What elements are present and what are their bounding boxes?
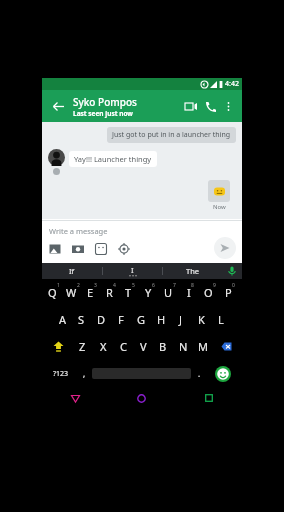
button[interactable]: C xyxy=(113,333,133,360)
button[interactable]: Location xyxy=(118,243,130,255)
staticText: W xyxy=(66,285,77,300)
staticText: 2 xyxy=(77,282,80,289)
button[interactable]: R xyxy=(101,279,120,306)
staticText: Y xyxy=(145,285,152,300)
staticText: H xyxy=(157,312,166,327)
button[interactable]: If xyxy=(42,266,102,276)
button[interactable]: Camera xyxy=(72,243,84,255)
button[interactable]: Y xyxy=(140,279,160,306)
staticText: Just got to put in in a launcher thing xyxy=(112,130,231,140)
staticText: 7 xyxy=(173,282,176,289)
staticText: V xyxy=(140,339,147,354)
button[interactable]: L xyxy=(211,306,231,333)
staticText: A xyxy=(59,312,67,327)
button[interactable]: B xyxy=(153,333,173,360)
button[interactable]: N xyxy=(173,333,193,360)
staticText: 6 xyxy=(152,282,155,289)
staticText: I xyxy=(131,265,134,275)
button[interactable]: W xyxy=(63,279,82,306)
staticText: P xyxy=(225,285,232,300)
button[interactable]: Shift xyxy=(44,333,72,360)
button[interactable]: ?123 xyxy=(45,360,76,387)
staticText: . xyxy=(198,368,201,379)
button[interactable]: Space xyxy=(92,360,191,387)
button[interactable]: T xyxy=(120,279,140,306)
button[interactable]: More options xyxy=(220,98,236,114)
button[interactable]: F xyxy=(111,306,131,333)
button[interactable]: Recents xyxy=(175,387,242,409)
button[interactable]: U xyxy=(160,279,180,306)
button[interactable]: S xyxy=(72,306,91,333)
staticText: 0 xyxy=(232,282,235,289)
staticText: T xyxy=(125,285,132,300)
staticText: 9 xyxy=(213,282,216,289)
button[interactable]: I xyxy=(103,265,162,277)
staticText: 4:42 xyxy=(225,79,239,89)
button[interactable]: M xyxy=(193,333,213,360)
staticText: 4 xyxy=(113,282,116,289)
button[interactable]: Video call xyxy=(180,96,200,116)
button[interactable]: Call xyxy=(200,96,220,116)
staticText: D xyxy=(97,312,106,327)
staticText: F xyxy=(118,312,124,327)
staticText: L xyxy=(218,312,224,327)
button[interactable]: E xyxy=(82,279,101,306)
staticText: E xyxy=(87,285,94,300)
button[interactable]: , xyxy=(76,360,92,387)
button[interactable]: K xyxy=(191,306,211,333)
button[interactable]: Z xyxy=(72,333,93,360)
staticText: Yay!!! Launcher thingy xyxy=(74,154,152,164)
staticText: , xyxy=(83,368,86,379)
staticText: 5 xyxy=(132,282,135,289)
staticText: The xyxy=(186,266,200,276)
button[interactable]: Back xyxy=(42,387,108,409)
button[interactable]: G xyxy=(131,306,151,333)
button[interactable] xyxy=(208,180,230,202)
button[interactable]: D xyxy=(91,306,111,333)
staticText: U xyxy=(164,285,173,300)
button[interactable]: A xyxy=(53,306,72,333)
staticText: 1 xyxy=(57,282,60,289)
staticText: Write a message xyxy=(49,226,108,236)
staticText: Syko Pompos xyxy=(73,95,137,109)
button[interactable]: Sticker xyxy=(95,243,107,255)
staticText: C xyxy=(120,339,127,354)
button[interactable]: Voice input xyxy=(222,266,242,276)
button[interactable]: Home xyxy=(108,387,175,409)
button[interactable]: Gallery xyxy=(49,243,61,255)
staticText: O xyxy=(204,285,213,300)
button[interactable]: Send xyxy=(214,237,236,259)
button[interactable]: O xyxy=(200,279,220,306)
button[interactable]: . xyxy=(191,360,207,387)
staticText: S xyxy=(78,312,85,327)
staticText: K xyxy=(198,312,205,327)
button[interactable]: V xyxy=(133,333,153,360)
staticText: G xyxy=(137,312,146,327)
staticText: 3 xyxy=(94,282,97,289)
button[interactable]: Backspace xyxy=(213,333,240,360)
staticText: N xyxy=(179,339,188,354)
button[interactable]: Emoji xyxy=(207,360,239,387)
staticText: X xyxy=(100,339,107,354)
staticText: Now xyxy=(213,203,226,211)
staticText: ?123 xyxy=(53,369,69,379)
staticText: R xyxy=(106,285,113,300)
button[interactable]: Back xyxy=(48,96,68,116)
staticText: If xyxy=(69,266,75,276)
button[interactable]: The xyxy=(163,266,222,276)
staticText: I xyxy=(187,285,191,300)
staticText: M xyxy=(198,339,208,354)
button[interactable]: J xyxy=(171,306,191,333)
staticText: Q xyxy=(48,285,57,300)
button[interactable]: I xyxy=(180,279,200,306)
button[interactable]: Yay!!! Launcher thingy xyxy=(69,151,157,167)
staticText: 8 xyxy=(191,282,194,289)
staticText: B xyxy=(159,339,167,354)
button[interactable]: H xyxy=(151,306,171,333)
staticText: Last seen just now xyxy=(73,109,133,118)
button[interactable]: Q xyxy=(44,279,63,306)
button[interactable]: P xyxy=(220,279,240,306)
button[interactable]: Just got to put in in a launcher thing xyxy=(107,127,236,143)
button[interactable]: X xyxy=(93,333,113,360)
staticText: Z xyxy=(79,339,86,354)
